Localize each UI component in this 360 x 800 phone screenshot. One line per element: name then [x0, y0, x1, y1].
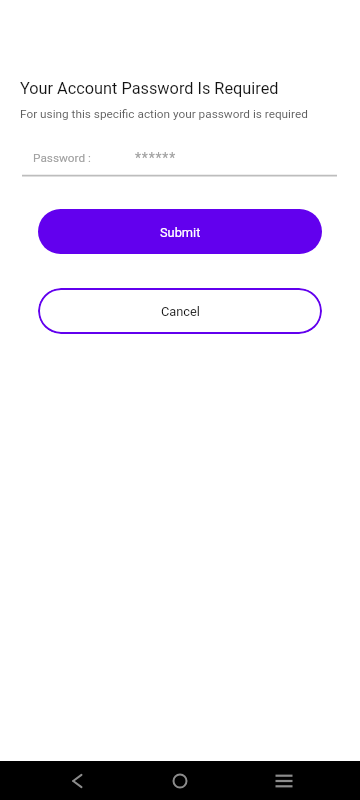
staticText: ****** — [135, 150, 176, 166]
button[interactable]: Home — [160, 761, 200, 800]
staticText: Password : — [33, 151, 91, 165]
button[interactable]: Cancel — [38, 288, 322, 334]
staticText: For using this specific action your pass… — [20, 107, 308, 121]
staticText: Cancel — [161, 304, 200, 319]
staticText: Submit — [160, 225, 201, 240]
button[interactable]: Back — [57, 761, 97, 800]
button[interactable]: Submit — [38, 209, 322, 254]
staticText: Your Account Password Is Required — [20, 79, 279, 98]
button[interactable]: Recent apps — [264, 761, 304, 800]
